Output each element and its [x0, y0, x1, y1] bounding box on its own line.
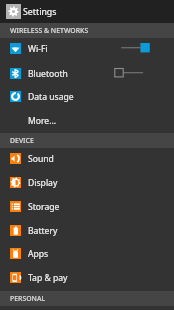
staticText: Tap & pay	[28, 272, 68, 284]
staticText: Settings	[23, 6, 57, 18]
staticText: Sound	[28, 153, 54, 165]
button[interactable]: Settings	[0, 0, 174, 22]
staticText: Storage	[28, 201, 60, 213]
button[interactable]: More…	[0, 109, 174, 133]
staticText: Bluetooth	[28, 68, 68, 80]
staticText: Display	[28, 177, 58, 189]
staticText: Wi-Fi	[28, 43, 48, 55]
button[interactable]: Bluetooth	[0, 62, 174, 86]
button[interactable]: Turn off	[114, 37, 174, 61]
staticText: More…	[28, 115, 57, 127]
staticText: Battery	[28, 225, 58, 237]
button[interactable]: Tap & pay	[0, 266, 174, 290]
staticText: DEVICE	[10, 136, 34, 145]
staticText: Apps	[28, 248, 49, 260]
button[interactable]: Turn on	[114, 62, 174, 86]
staticText: WIRELESS & NETWORKS	[10, 26, 89, 35]
button[interactable]: Storage	[0, 195, 174, 219]
button[interactable]: Data usage	[0, 85, 174, 109]
staticText: Data usage	[28, 91, 74, 103]
button[interactable]: Battery	[0, 219, 174, 243]
button[interactable]: Wi-Fi	[0, 37, 174, 61]
button[interactable]: Apps	[0, 242, 174, 266]
button[interactable]: Sound	[0, 147, 174, 171]
staticText: PERSONAL	[10, 294, 46, 303]
button[interactable]: Display	[0, 171, 174, 195]
